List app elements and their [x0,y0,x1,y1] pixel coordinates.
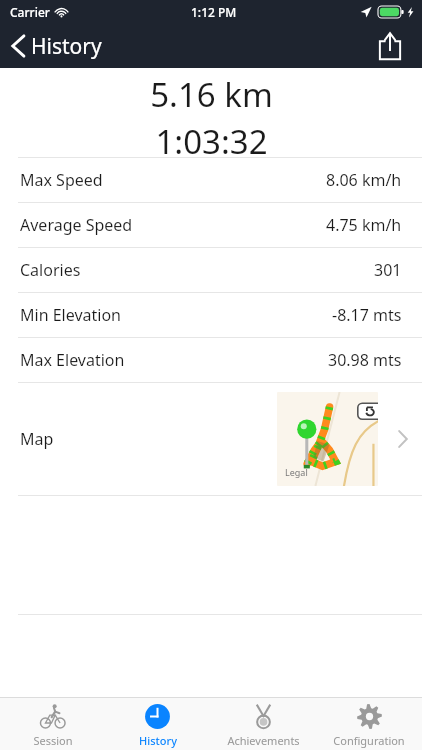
staticText: Average Speed [20,214,133,236]
button[interactable]: Max Speed [0,158,422,202]
staticText: History [139,733,177,748]
staticText: Achievements [227,733,300,748]
button[interactable]: History [105,698,210,750]
staticText: Legal [285,466,308,478]
button[interactable]: Session [0,698,105,750]
staticText: 8.06 km/h [326,169,402,191]
staticText: 5.16 km [150,72,273,117]
button[interactable]: Average Speed [0,203,422,247]
staticText: Min Elevation [20,304,121,326]
staticText: Calories [20,259,81,281]
button[interactable]: Achievements [210,698,316,750]
staticText: History [31,32,102,61]
staticText: 301 [374,259,402,281]
staticText: 1:12 PM [191,4,237,20]
staticText: Carrier [10,4,50,20]
button[interactable]: Max Elevation [0,338,422,382]
staticText: Session [33,733,73,748]
button[interactable]: Calories [0,248,422,292]
staticText: Max Elevation [20,349,125,371]
staticText: Map [20,428,54,450]
button[interactable]: History [0,24,114,68]
staticText: -8.17 mts [332,304,402,326]
button[interactable]: Map [0,383,422,495]
button[interactable]: Share [372,28,408,64]
staticText: 30.98 mts [328,349,402,371]
staticText: Configuration [333,733,405,748]
button[interactable]: Min Elevation [0,293,422,337]
staticText: 4.75 km/h [326,214,402,236]
staticText: 1:03:32 [155,119,268,157]
button[interactable]: Configuration [316,698,422,750]
staticText: Max Speed [20,169,103,191]
